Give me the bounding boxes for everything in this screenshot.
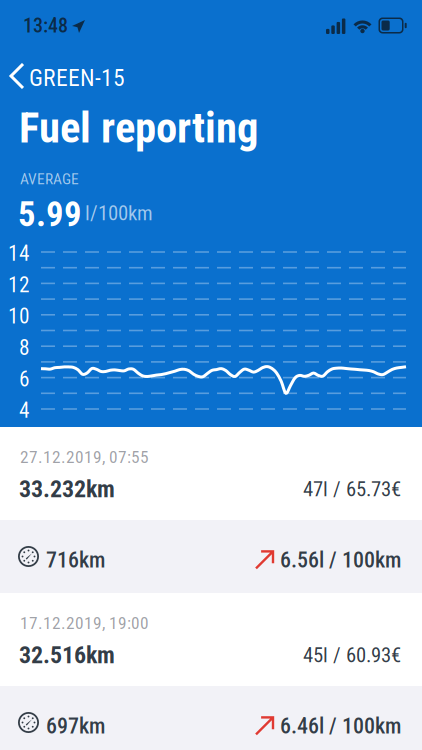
staticText: 8: [19, 335, 30, 360]
staticText: 716km: [46, 547, 105, 573]
staticText: 13:48: [23, 14, 68, 37]
staticText: 17.12.2019, 19:00: [20, 613, 149, 633]
staticText: 6: [19, 367, 30, 392]
button[interactable]: GREEN-15: [0, 56, 140, 96]
button[interactable]: 27.12.2019, 07:55: [0, 427, 422, 520]
staticText: 32.516km: [19, 641, 115, 669]
staticText: 5.99: [18, 194, 82, 235]
staticText: 697km: [46, 713, 105, 739]
staticText: 14: [8, 241, 30, 266]
staticText: 6.56l / 100km: [280, 547, 401, 573]
staticText: 12: [8, 272, 30, 297]
staticText: 33.232km: [19, 475, 115, 503]
button[interactable]: 716km: [0, 520, 422, 593]
staticText: 6.46l / 100km: [280, 713, 401, 739]
staticText: 10: [8, 304, 30, 329]
staticText: GREEN-15: [29, 64, 125, 92]
staticText: l/100km: [85, 201, 153, 225]
staticText: 4: [19, 398, 30, 423]
button[interactable]: 17.12.2019, 19:00: [0, 593, 422, 686]
button[interactable]: 697km: [0, 686, 422, 750]
staticText: Fuel reporting: [19, 103, 258, 153]
staticText: AVERAGE: [20, 170, 79, 188]
staticText: 47l / 65.73€: [303, 477, 401, 501]
staticText: 27.12.2019, 07:55: [20, 447, 149, 467]
staticText: 45l / 60.93€: [303, 643, 401, 667]
